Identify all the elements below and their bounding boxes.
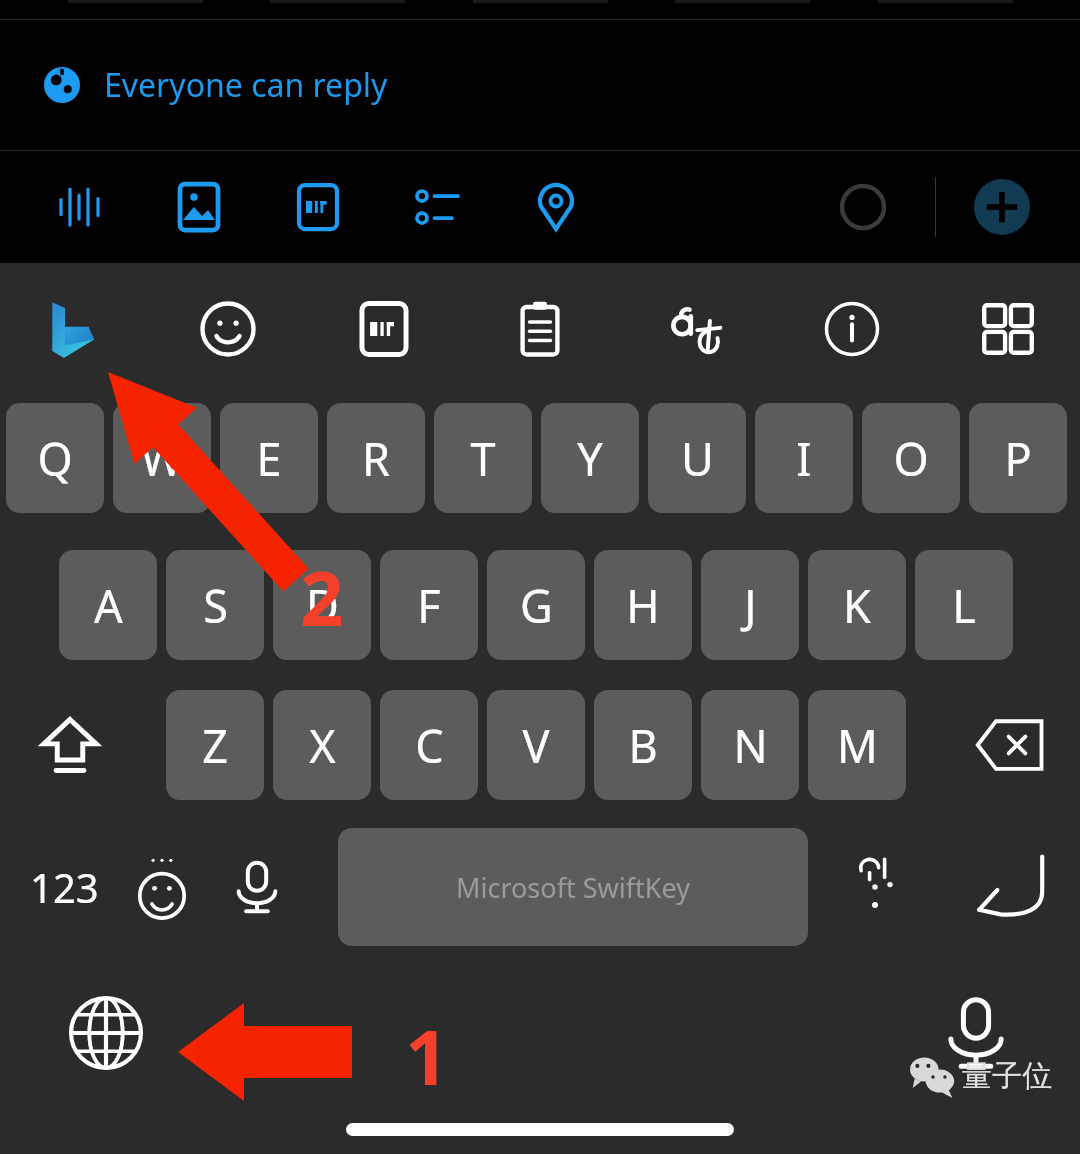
staticText: K [843, 575, 871, 636]
staticText: T [470, 428, 496, 489]
button[interactable]: GIF search [342, 287, 426, 371]
staticText: Q [37, 428, 73, 489]
staticText: D [306, 575, 339, 636]
button[interactable]: Voice [44, 171, 116, 243]
button[interactable]: D [273, 550, 371, 660]
staticText: F [417, 575, 441, 636]
staticText: Z [202, 715, 228, 776]
button[interactable]: Emoji [186, 287, 270, 371]
staticText: B [628, 715, 658, 776]
button[interactable]: Bing [30, 287, 114, 371]
button[interactable]: Punctuation [844, 844, 930, 930]
staticText: Y [577, 428, 603, 489]
staticText: O [893, 428, 929, 489]
button[interactable]: Voice input [218, 848, 296, 926]
button[interactable]: P [969, 403, 1067, 513]
staticText: S [203, 575, 228, 636]
staticText: 量子位 [962, 1057, 1052, 1095]
staticText: N [733, 715, 768, 776]
button[interactable]: W [113, 403, 211, 513]
staticText: I [796, 428, 812, 489]
staticText: A [94, 575, 123, 636]
button[interactable]: Q [6, 403, 104, 513]
staticText: J [744, 575, 757, 636]
button[interactable]: GIF [282, 171, 354, 243]
button[interactable]: Switch language [52, 979, 160, 1087]
button[interactable]: Media [163, 171, 235, 243]
button[interactable]: K [808, 550, 906, 660]
staticText: L [952, 575, 976, 636]
button[interactable]: J [701, 550, 799, 660]
button[interactable]: A [59, 550, 157, 660]
button[interactable]: L [915, 550, 1013, 660]
button[interactable]: Location [520, 171, 592, 243]
staticText: U [681, 428, 714, 489]
button[interactable]: T [434, 403, 532, 513]
button[interactable]: Emoji [122, 847, 202, 927]
button[interactable]: Poll [401, 171, 473, 243]
staticText: W [141, 428, 183, 489]
staticText: 123 [30, 860, 99, 914]
button[interactable]: Shift [16, 691, 124, 799]
staticText: R [362, 428, 390, 489]
staticText: C [415, 715, 444, 776]
button[interactable]: O [862, 403, 960, 513]
staticText: V [522, 715, 550, 776]
button[interactable]: 123 [14, 832, 114, 942]
button[interactable]: E [220, 403, 318, 513]
button[interactable]: Microsoft SwiftKey [338, 828, 808, 946]
staticText: P [1004, 428, 1032, 489]
button[interactable]: Enter [958, 837, 1058, 937]
button[interactable]: Clipboard [498, 287, 582, 371]
button[interactable]: F [380, 550, 478, 660]
staticText: H [626, 575, 660, 636]
button[interactable]: S [166, 550, 264, 660]
staticText: Microsoft SwiftKey [456, 869, 690, 906]
button[interactable]: M [808, 690, 906, 800]
button[interactable]: G [487, 550, 585, 660]
staticText: 1 [405, 1004, 449, 1108]
button[interactable]: Everyone can reply [0, 20, 1080, 150]
button[interactable]: More [966, 287, 1050, 371]
button[interactable]: U [648, 403, 746, 513]
staticText: G [520, 575, 553, 636]
button[interactable]: Add tweet [966, 171, 1038, 243]
button[interactable]: Backspace [956, 691, 1064, 799]
button[interactable]: B [594, 690, 692, 800]
button[interactable]: V [487, 690, 585, 800]
staticText: Everyone can reply [104, 63, 388, 107]
staticText: M [837, 715, 878, 776]
button[interactable]: Y [541, 403, 639, 513]
button[interactable]: Dictation [922, 979, 1030, 1087]
button[interactable]: Info [810, 287, 894, 371]
button[interactable]: Translate [654, 287, 738, 371]
button[interactable]: C [380, 690, 478, 800]
button[interactable]: X [273, 690, 371, 800]
button[interactable]: Character count [828, 172, 898, 242]
staticText: E [256, 428, 282, 489]
button[interactable]: H [594, 550, 692, 660]
button[interactable]: Z [166, 690, 264, 800]
button[interactable]: R [327, 403, 425, 513]
staticText: X [309, 715, 336, 776]
staticText: 2 [300, 545, 344, 649]
button[interactable]: N [701, 690, 799, 800]
button[interactable]: I [755, 403, 853, 513]
